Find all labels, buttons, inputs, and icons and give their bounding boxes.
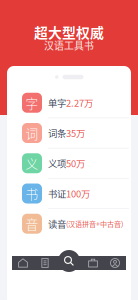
staticText: 35万 [66, 126, 85, 140]
staticText: 超大型权威 [34, 22, 104, 42]
staticText: 音 [25, 215, 38, 233]
staticText: 100万 [66, 187, 90, 200]
staticText: 单字 [48, 96, 66, 109]
staticText: 汉语工具书 [44, 38, 94, 52]
button[interactable]: 词 [7, 118, 131, 148]
staticText: 词条 [48, 126, 66, 140]
button[interactable]: Search [58, 250, 80, 272]
staticText: (汉语拼音+中古音) [66, 219, 123, 229]
staticText: 义项 [48, 156, 66, 170]
button[interactable]: Tools [82, 256, 104, 270]
button[interactable]: 字 [7, 88, 131, 117]
staticText: 义 [25, 154, 38, 172]
staticText: 字 [25, 94, 38, 112]
button[interactable]: 音 [7, 209, 131, 238]
button[interactable]: 书 [7, 179, 131, 208]
button[interactable]: Profile [104, 256, 126, 270]
button[interactable]: 义 [7, 148, 131, 178]
button[interactable]: Home [12, 256, 34, 270]
staticText: 书 [25, 184, 38, 203]
staticText: 书证 [48, 187, 66, 200]
staticText: 读音 [48, 217, 66, 230]
staticText: 2.27万 [66, 96, 93, 109]
staticText: 词 [25, 124, 38, 142]
button[interactable]: Library [34, 256, 56, 270]
staticText: 50万 [66, 156, 85, 170]
